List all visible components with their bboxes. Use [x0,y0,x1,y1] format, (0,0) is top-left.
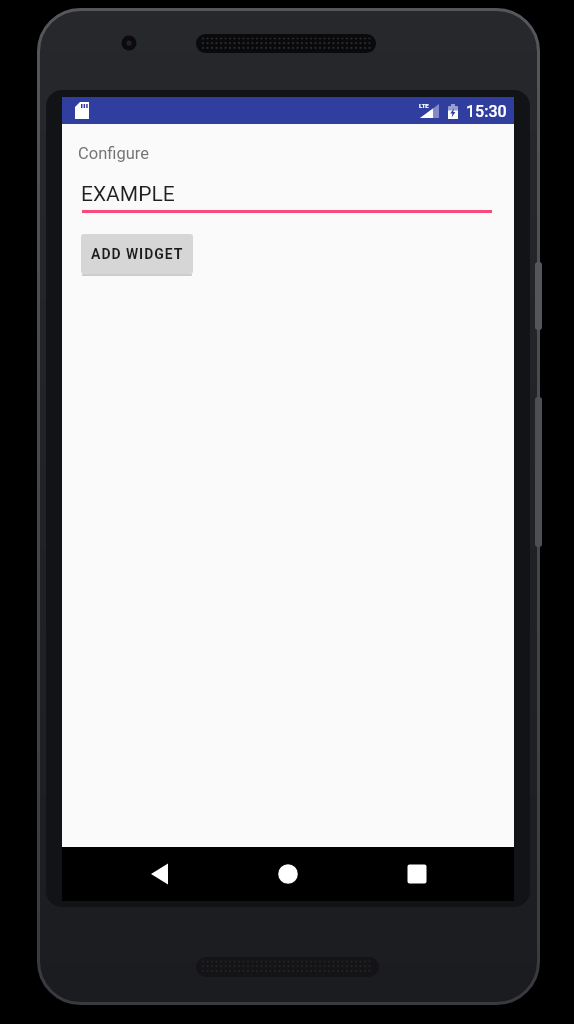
button[interactable] [264,860,312,888]
staticText: EXAMPLE [81,182,175,207]
button[interactable] [82,172,492,213]
button[interactable] [393,860,441,888]
staticText: Configure [78,144,149,163]
staticText: ADD WIDGET [91,246,184,262]
staticText: 15:30 [466,102,507,121]
staticText: LTE [419,102,429,109]
button[interactable]: ADD WIDGET [81,234,193,274]
button[interactable] [135,860,183,888]
